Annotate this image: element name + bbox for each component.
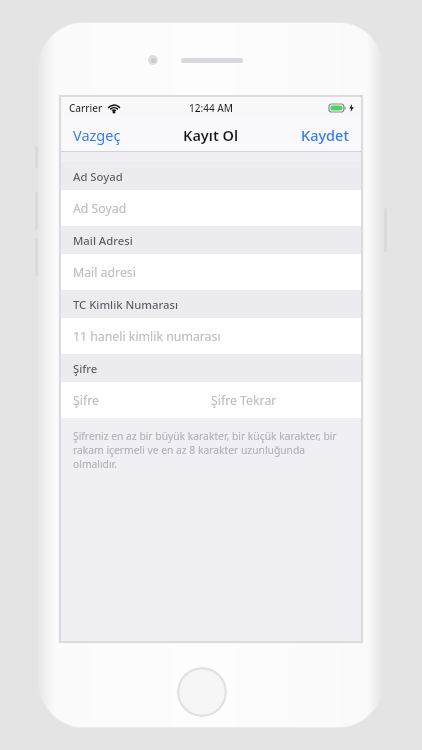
staticText: Kaydet (301, 125, 349, 145)
staticText: 12:44 AM (189, 101, 233, 115)
staticText: Şifreniz en az bir büyük karakter, bir k… (73, 429, 337, 471)
button[interactable]: Home (177, 667, 227, 717)
button[interactable]: Mail adresi (61, 254, 361, 290)
button[interactable]: Ad Soyad (61, 190, 361, 226)
staticText: Carrier (69, 101, 103, 115)
staticText: Vazgeç (73, 125, 121, 145)
staticText: Ad Soyad (73, 200, 127, 217)
button[interactable]: Kaydet (294, 120, 356, 150)
staticText: Mail adresi (73, 264, 136, 281)
staticText: Şifre (73, 361, 98, 376)
button[interactable]: Vazgeç (66, 120, 128, 150)
staticText: Ad Soyad (73, 169, 123, 184)
staticText: TC Kimlik Numarası (73, 297, 179, 312)
staticText: Kayıt Ol (183, 125, 239, 145)
button[interactable]: Şifre (61, 382, 361, 418)
staticText: Şifre Tekrar (211, 392, 277, 409)
staticText: Şifre (73, 392, 99, 409)
button[interactable]: 11 haneli kimlik numarası (61, 318, 361, 354)
staticText: Mail Adresi (73, 233, 133, 248)
staticText: 11 haneli kimlik numarası (73, 328, 221, 345)
